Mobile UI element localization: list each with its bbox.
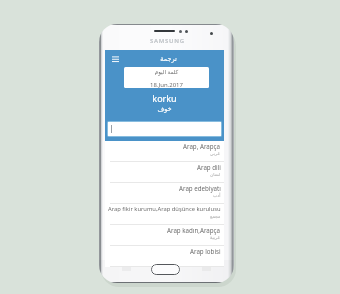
button[interactable]: Arap dili xyxy=(105,162,224,183)
staticText: عربية xyxy=(210,235,221,240)
staticText: Arap edebiyatı xyxy=(179,184,221,192)
button[interactable] xyxy=(108,122,221,136)
staticText: لسان xyxy=(210,172,221,177)
staticText: كلمة اليوم xyxy=(124,68,209,76)
staticText: Arap fikir kurumu,Arap düşünce kurulusu xyxy=(108,205,221,213)
staticText: مجمع xyxy=(210,214,221,219)
staticText: 18.Jun.2017 xyxy=(124,81,209,88)
staticText: Arap, Arapça xyxy=(183,142,221,150)
button[interactable]: Arap fikir kurumu,Arap düşünce kurulusu xyxy=(105,204,224,225)
staticText: ترجمة xyxy=(109,55,228,62)
staticText: Arap dili xyxy=(197,163,221,171)
button[interactable]: Menu xyxy=(112,56,119,62)
staticText: خوف xyxy=(105,105,224,113)
staticText: Arap lobisi xyxy=(190,247,221,255)
button[interactable]: Arap kadın,Arapça xyxy=(105,225,224,246)
staticText: SAMSUNG xyxy=(150,37,185,45)
button[interactable]: Arap edebiyatı xyxy=(105,183,224,204)
staticText: عربي xyxy=(210,151,221,156)
button[interactable]: Arap lobisi xyxy=(105,246,224,267)
staticText: korku xyxy=(105,92,224,104)
staticText: أدب xyxy=(213,193,221,198)
staticText: Arap kadın,Arapça xyxy=(167,226,221,234)
button[interactable]: Arap, Arapça xyxy=(105,141,224,162)
